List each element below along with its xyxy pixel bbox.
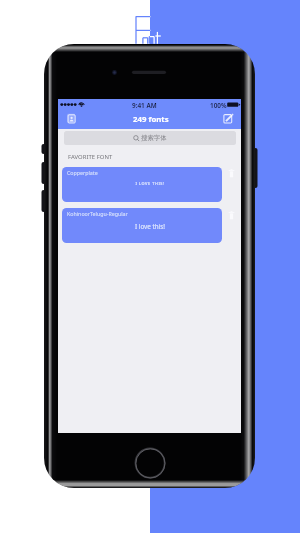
button[interactable]: KohinoorTelugu-Regular (62, 208, 222, 243)
button[interactable]: Compose (223, 113, 234, 124)
button[interactable]: Copperplate (62, 167, 222, 202)
staticText: I love this! (135, 222, 165, 231)
button[interactable]: 搜索字体 (64, 131, 236, 145)
staticText: 100% (210, 101, 227, 110)
staticText: 搜索字体 (141, 134, 167, 142)
staticText: 9:41 AM (132, 101, 157, 110)
staticText: I LOVE THIS! (135, 181, 165, 186)
button[interactable]: Delete (227, 169, 236, 178)
staticText: Copperplate (67, 169, 98, 176)
button[interactable]: Delete (227, 211, 236, 220)
staticText: KohinoorTelugu-Regular (67, 210, 128, 217)
staticText: 249 fonts (133, 114, 169, 125)
staticText: FAVORITE FONT (68, 153, 113, 161)
button[interactable]: Contacts (66, 113, 77, 124)
